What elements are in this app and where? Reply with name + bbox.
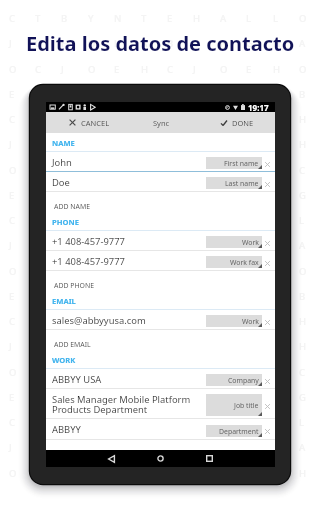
- staticText: J: [61, 265, 64, 278]
- staticText: CANCEL: [81, 118, 110, 128]
- staticText: O: [193, 441, 201, 454]
- staticText: C: [141, 416, 148, 429]
- button[interactable]: +1 408-457-9777: [46, 251, 275, 271]
- button[interactable]: ABBYY USA: [46, 369, 275, 389]
- staticText: E: [246, 265, 252, 278]
- staticText: O: [141, 315, 149, 328]
- button[interactable]: ADD PHONE: [46, 271, 275, 291]
- staticText: G: [246, 239, 253, 252]
- staticText: O: [141, 164, 149, 177]
- staticText: J: [9, 138, 12, 151]
- staticText: H: [61, 441, 69, 454]
- staticText: O: [193, 239, 201, 252]
- staticText: L: [88, 315, 94, 328]
- staticText: E: [273, 315, 279, 328]
- staticText: O: [220, 113, 228, 126]
- staticText: O: [61, 315, 69, 328]
- staticText: O: [220, 315, 228, 328]
- staticText: John: [52, 156, 72, 169]
- staticText: N: [273, 391, 281, 404]
- staticText: N: [220, 239, 228, 252]
- button[interactable]: Sync: [123, 112, 199, 133]
- staticText: O: [141, 391, 149, 404]
- button[interactable]: Home: [152, 450, 169, 467]
- staticText: Sales Manager Mobile Platform Products D…: [52, 393, 191, 416]
- button[interactable]: +1 408-457-9777: [46, 231, 275, 251]
- staticText: O: [88, 63, 96, 76]
- staticText: H: [299, 467, 307, 480]
- button[interactable]: Sales Manager Mobile Platform Products D…: [46, 389, 275, 419]
- staticText: L: [114, 441, 120, 454]
- button[interactable]: Clear: [263, 239, 272, 248]
- button[interactable]: ADD EMAIL: [46, 330, 275, 350]
- staticText: O: [193, 37, 201, 50]
- staticText: Job title: [234, 401, 259, 410]
- staticText: E: [220, 164, 226, 177]
- button[interactable]: CANCEL: [46, 112, 123, 133]
- button[interactable]: Back: [103, 450, 120, 467]
- button[interactable]: Clear: [263, 259, 272, 268]
- staticText: O: [141, 366, 149, 379]
- staticText: E: [246, 63, 252, 76]
- button[interactable]: ABBYY: [46, 419, 275, 440]
- button[interactable]: Clear: [263, 427, 272, 436]
- staticText: H: [114, 164, 122, 177]
- staticText: J: [61, 366, 64, 379]
- staticText: B: [167, 239, 174, 252]
- button[interactable]: sales@abbyyusa.com: [46, 310, 275, 330]
- button[interactable]: DONE: [199, 112, 275, 133]
- staticText: Department: [219, 427, 259, 436]
- button[interactable]: Clear: [263, 160, 272, 169]
- button[interactable]: John: [46, 152, 275, 172]
- staticText: O: [9, 265, 17, 278]
- staticText: G: [273, 138, 280, 151]
- staticText: E: [114, 63, 120, 76]
- staticText: L: [299, 416, 305, 429]
- staticText: C: [9, 214, 16, 227]
- button[interactable]: Clear: [263, 180, 272, 189]
- staticText: N: [273, 189, 281, 202]
- staticText: Doe: [52, 176, 70, 189]
- staticText: J: [193, 265, 196, 278]
- staticText: O: [88, 239, 96, 252]
- staticText: B: [299, 88, 306, 101]
- button[interactable]: ADD NAME: [46, 192, 275, 212]
- staticText: DONE: [232, 118, 254, 128]
- button[interactable]: Doe: [46, 172, 275, 192]
- staticText: E: [9, 290, 15, 303]
- staticText: G: [299, 391, 306, 404]
- staticText: H: [299, 138, 307, 151]
- staticText: N: [220, 37, 228, 50]
- staticText: O: [273, 366, 281, 379]
- button[interactable]: Clear: [263, 377, 272, 386]
- button[interactable]: Recents: [201, 450, 218, 467]
- staticText: C: [9, 12, 16, 25]
- staticText: J: [61, 164, 64, 177]
- staticText: L: [273, 12, 279, 25]
- staticText: O: [220, 63, 228, 76]
- button[interactable]: Clear: [263, 318, 272, 327]
- button[interactable]: Clear: [263, 402, 272, 411]
- staticText: H: [114, 189, 122, 202]
